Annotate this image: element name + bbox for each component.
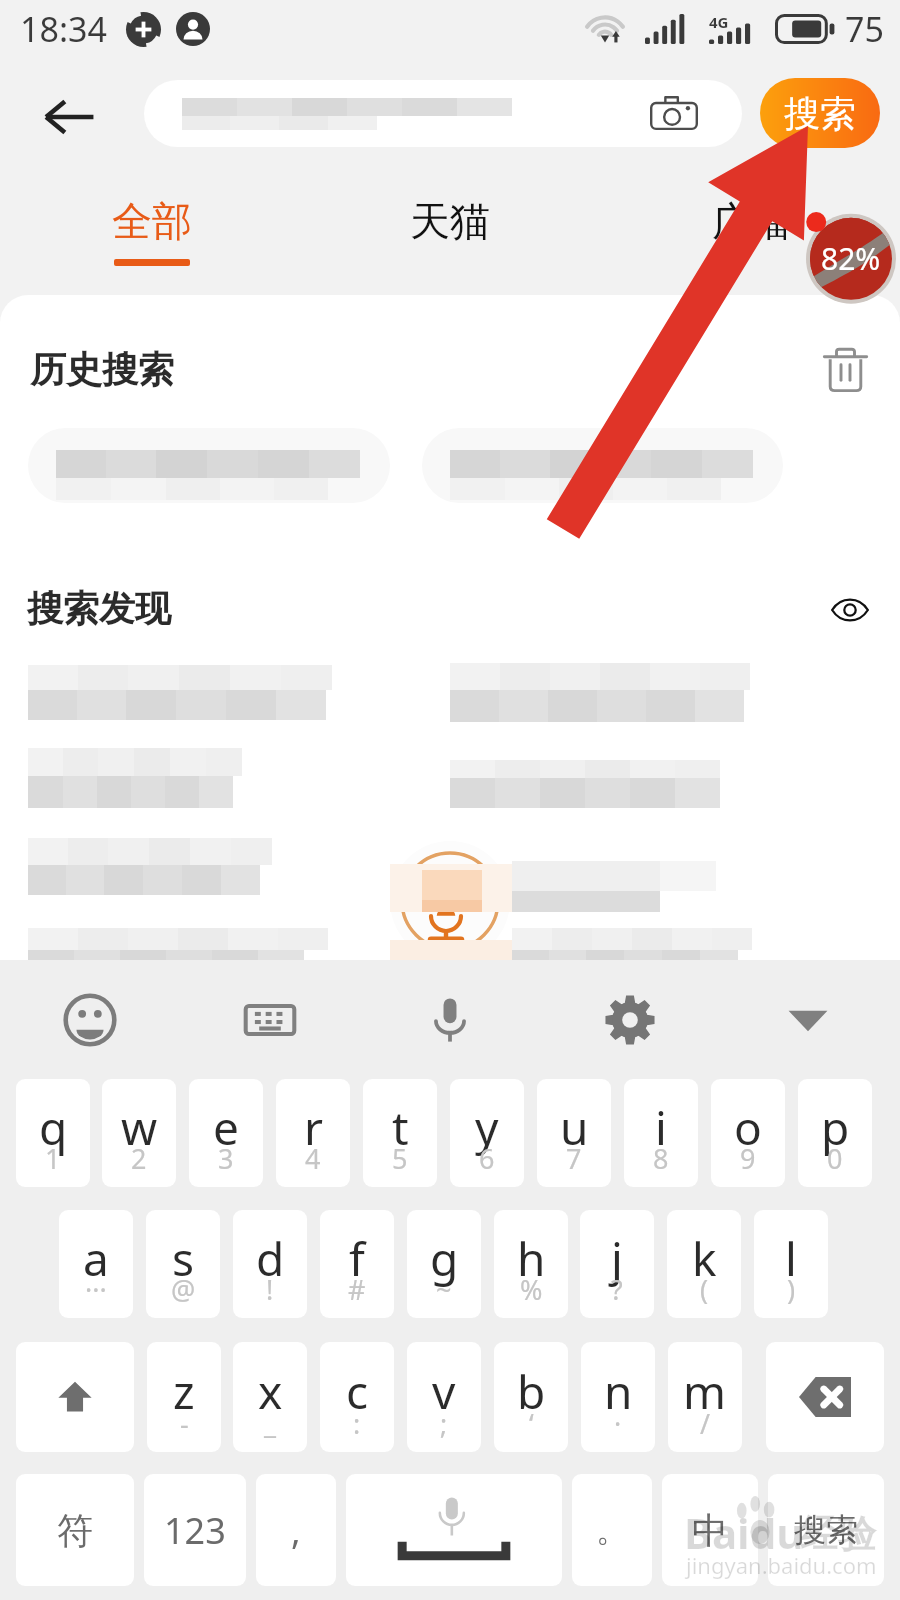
staticText: y bbox=[475, 1096, 499, 1159]
button[interactable] bbox=[28, 665, 332, 720]
staticText: 搜索 bbox=[794, 1510, 858, 1550]
staticText: x bbox=[258, 1360, 283, 1423]
staticText: 0 bbox=[827, 1140, 843, 1177]
button[interactable]: Space bbox=[346, 1474, 562, 1586]
button[interactable]: 天猫 bbox=[375, 176, 525, 295]
button[interactable]: n bbox=[581, 1342, 655, 1452]
button[interactable]: j bbox=[580, 1210, 654, 1318]
button[interactable]: m bbox=[668, 1342, 742, 1452]
staticText: i bbox=[655, 1096, 667, 1159]
button[interactable]: z bbox=[147, 1342, 221, 1452]
button[interactable]: 搜索 bbox=[760, 78, 880, 148]
button[interactable]: Voice search bbox=[390, 841, 510, 961]
staticText: 广播 bbox=[712, 196, 792, 246]
button[interactable]: e bbox=[189, 1079, 263, 1187]
staticText: % bbox=[520, 1271, 543, 1308]
button[interactable]: 全部 bbox=[77, 176, 227, 295]
button[interactable] bbox=[28, 928, 328, 978]
button[interactable]: c bbox=[320, 1342, 394, 1452]
button[interactable]: 中 bbox=[662, 1474, 758, 1586]
staticText: , bbox=[291, 1506, 301, 1555]
staticText: o bbox=[734, 1096, 762, 1159]
staticText: l bbox=[785, 1227, 797, 1290]
button[interactable]: Voice input bbox=[406, 976, 494, 1064]
staticText: @ bbox=[171, 1271, 196, 1308]
staticText: jingyan.baidu.com bbox=[686, 1550, 877, 1580]
staticText: 。 bbox=[596, 1510, 628, 1550]
staticText: ‘ bbox=[529, 1405, 534, 1442]
staticText: 6 bbox=[479, 1140, 495, 1177]
staticText: 1 bbox=[45, 1140, 61, 1177]
button[interactable]: p bbox=[798, 1079, 872, 1187]
staticText: m bbox=[683, 1360, 727, 1423]
button[interactable]: Clear search history bbox=[815, 339, 875, 399]
button[interactable]: f bbox=[320, 1210, 394, 1318]
button[interactable]: Emoji bbox=[46, 976, 134, 1064]
button[interactable] bbox=[450, 663, 750, 722]
button[interactable]: Camera search bbox=[648, 88, 700, 140]
button[interactable]: d bbox=[233, 1210, 307, 1318]
button[interactable] bbox=[28, 748, 242, 808]
button[interactable]: q bbox=[16, 1079, 90, 1187]
button[interactable] bbox=[28, 428, 390, 503]
staticText: ( bbox=[700, 1271, 709, 1308]
staticText: ; bbox=[440, 1405, 448, 1442]
staticText: b bbox=[517, 1360, 546, 1423]
button[interactable]: k bbox=[667, 1210, 741, 1318]
button[interactable]: s bbox=[146, 1210, 220, 1318]
staticText: t bbox=[392, 1096, 409, 1159]
staticText: u bbox=[560, 1096, 589, 1159]
button[interactable]: u bbox=[537, 1079, 611, 1187]
staticText: 9 bbox=[740, 1140, 756, 1177]
staticText: v bbox=[432, 1360, 456, 1423]
staticText: e bbox=[213, 1096, 239, 1159]
staticText: 搜索 bbox=[784, 91, 856, 136]
button[interactable]: Toggle discovery visibility bbox=[820, 580, 880, 640]
button[interactable]: h bbox=[494, 1210, 568, 1318]
button[interactable]: 。 bbox=[572, 1474, 652, 1586]
staticText: f bbox=[349, 1227, 365, 1290]
button[interactable]: i bbox=[624, 1079, 698, 1187]
button[interactable]: Back bbox=[38, 86, 100, 148]
staticText: 8 bbox=[653, 1140, 669, 1177]
button[interactable] bbox=[512, 928, 752, 978]
button[interactable]: Backspace bbox=[766, 1342, 884, 1452]
button[interactable]: v bbox=[407, 1342, 481, 1452]
button[interactable]: Keyboard settings bbox=[586, 976, 674, 1064]
button[interactable]: 123 bbox=[144, 1474, 246, 1586]
button[interactable]: w bbox=[102, 1079, 176, 1187]
button[interactable]: 搜索 bbox=[768, 1474, 884, 1586]
staticText: 天猫 bbox=[410, 196, 490, 246]
staticText: 123 bbox=[164, 1506, 226, 1555]
button[interactable]: Hide keyboard bbox=[764, 976, 852, 1064]
button[interactable]: t bbox=[363, 1079, 437, 1187]
button[interactable]: r bbox=[276, 1079, 350, 1187]
button[interactable] bbox=[450, 760, 720, 808]
button[interactable]: x bbox=[233, 1342, 307, 1452]
button[interactable]: Shift bbox=[16, 1342, 134, 1452]
staticText: ) bbox=[787, 1271, 796, 1308]
button[interactable]: a bbox=[59, 1210, 133, 1318]
staticText: d bbox=[256, 1227, 285, 1290]
button[interactable]: o bbox=[711, 1079, 785, 1187]
button[interactable]: b bbox=[494, 1342, 568, 1452]
button[interactable]: , bbox=[256, 1474, 336, 1586]
button[interactable] bbox=[28, 838, 272, 895]
staticText: h bbox=[517, 1227, 546, 1290]
button[interactable]: 符 bbox=[16, 1474, 134, 1586]
staticText: 2 bbox=[131, 1140, 147, 1177]
staticText: 3 bbox=[218, 1140, 234, 1177]
button[interactable]: Camera search bbox=[144, 80, 742, 147]
staticText: 4G bbox=[709, 12, 729, 32]
button[interactable]: g bbox=[407, 1210, 481, 1318]
staticText: g bbox=[430, 1227, 459, 1290]
staticText: 18:34 bbox=[20, 6, 107, 52]
staticText: 75 bbox=[845, 6, 884, 52]
button[interactable]: l bbox=[754, 1210, 828, 1318]
button[interactable]: 广播 bbox=[677, 176, 827, 295]
button[interactable]: Switch keyboard bbox=[226, 976, 314, 1064]
staticText: # bbox=[348, 1271, 366, 1308]
button[interactable]: y bbox=[450, 1079, 524, 1187]
button[interactable] bbox=[422, 428, 783, 503]
staticText: 5 bbox=[392, 1140, 408, 1177]
